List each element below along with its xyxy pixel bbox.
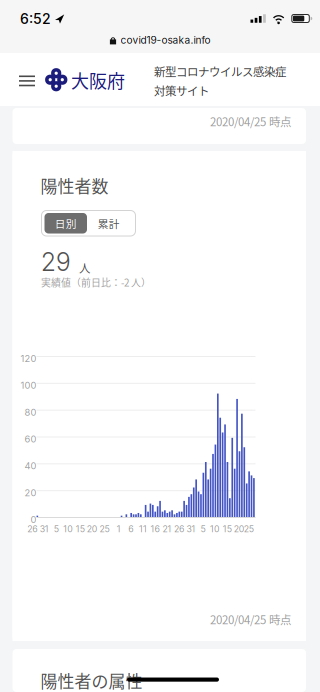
staticText: 31 <box>186 524 195 534</box>
staticText: 日別 <box>55 215 77 231</box>
staticText: 6 <box>128 524 133 534</box>
staticText: 16 <box>150 524 159 534</box>
button[interactable]: 日別 <box>44 213 87 233</box>
staticText: 2020/04/25 時点 <box>210 113 291 130</box>
staticText: 大阪府 <box>71 67 125 93</box>
button[interactable]: 大阪府 <box>45 67 125 93</box>
staticText: 15 <box>223 524 232 534</box>
staticText: 40 <box>24 460 36 472</box>
staticText: 累計 <box>98 215 120 231</box>
staticText: 20 <box>234 524 245 534</box>
staticText: 新型コロナウイルス感染症 <box>154 63 286 80</box>
staticText: 2020/04/25 時点 <box>210 611 291 628</box>
staticText: 80 <box>24 407 36 418</box>
staticText: 10 <box>63 524 73 534</box>
button[interactable]: 累計 <box>87 213 130 233</box>
staticText: 5 <box>54 524 59 534</box>
staticText: 25 <box>244 524 254 534</box>
staticText: 29 <box>41 247 71 277</box>
staticText: 陽性者数 <box>40 173 108 197</box>
staticText: 人 <box>79 259 90 276</box>
staticText: 陽性者の属性 <box>40 668 142 692</box>
staticText: 120 <box>20 353 36 364</box>
staticText: 25 <box>99 524 109 534</box>
staticText: 実績値（前日比：-2 人） <box>41 275 151 289</box>
staticText: 0 <box>30 514 36 525</box>
staticText: 10 <box>210 524 220 534</box>
staticText: 15 <box>76 524 85 534</box>
staticText: 5 <box>201 524 206 534</box>
staticText: 20 <box>87 524 98 534</box>
staticText: 21 <box>162 524 171 534</box>
button[interactable]: Menu <box>19 76 35 86</box>
staticText: 26 <box>174 524 184 534</box>
staticText: 60 <box>24 433 36 445</box>
staticText: 26 <box>27 524 37 534</box>
staticText: 1 <box>117 524 121 534</box>
staticText: 11 <box>139 524 147 534</box>
staticText: 20 <box>24 487 36 498</box>
staticText: 対策サイト <box>154 82 209 99</box>
staticText: 6:52 <box>20 10 51 27</box>
staticText: 31 <box>40 524 49 534</box>
staticText: 100 <box>20 380 36 391</box>
staticText: covid19-osaka.info <box>121 34 211 46</box>
